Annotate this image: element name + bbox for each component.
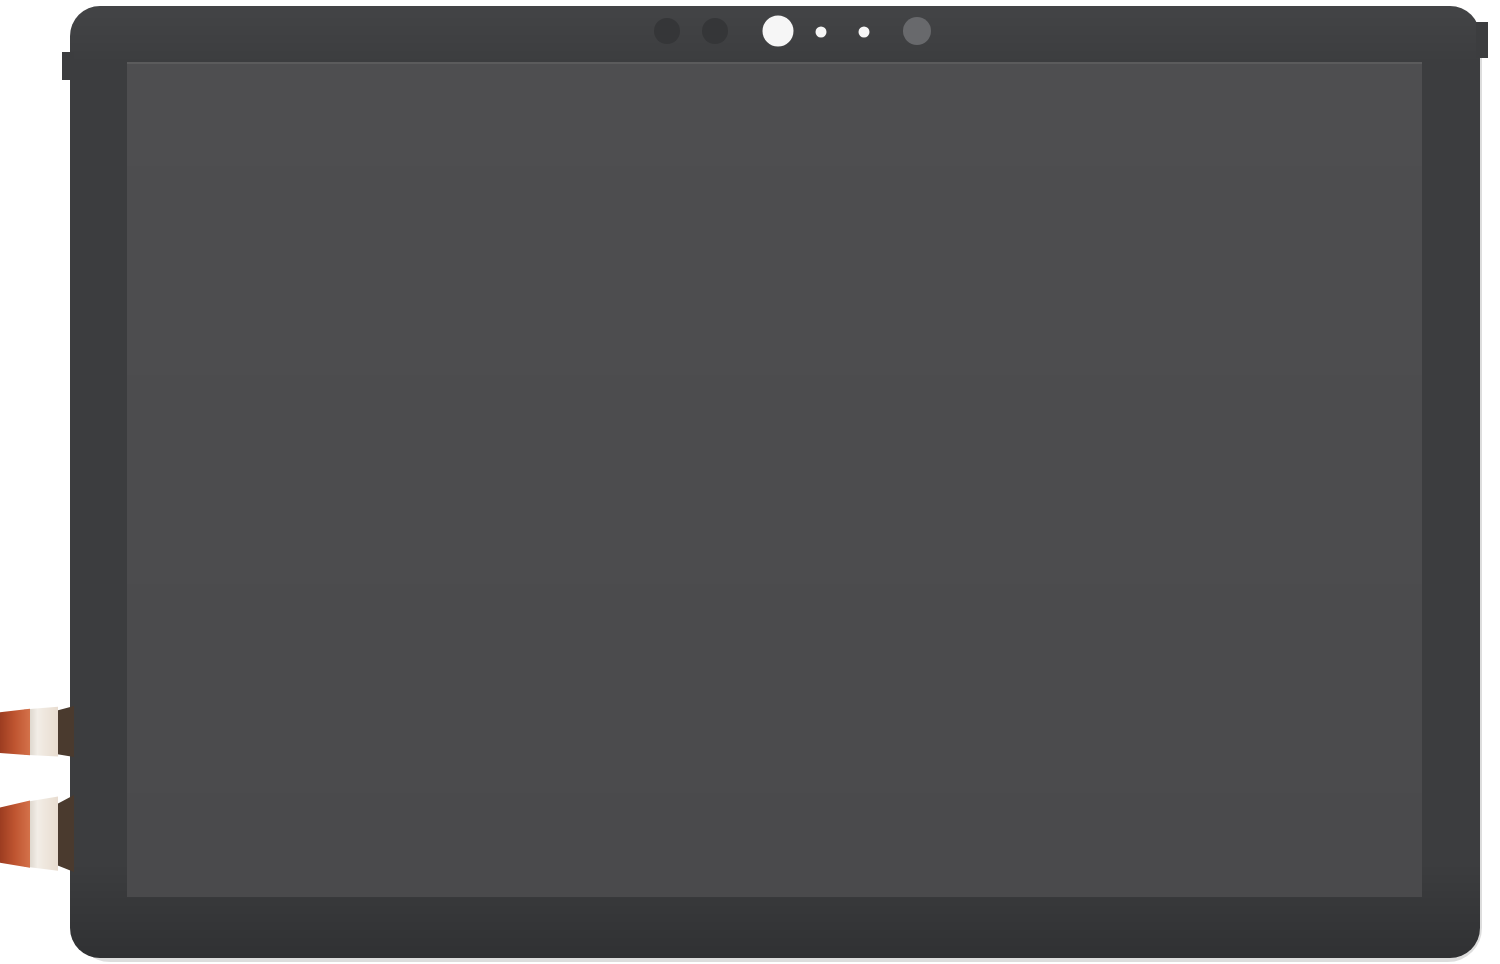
button[interactable]: Tablet LCD screen assembly with flex cab…: [0, 0, 1500, 964]
